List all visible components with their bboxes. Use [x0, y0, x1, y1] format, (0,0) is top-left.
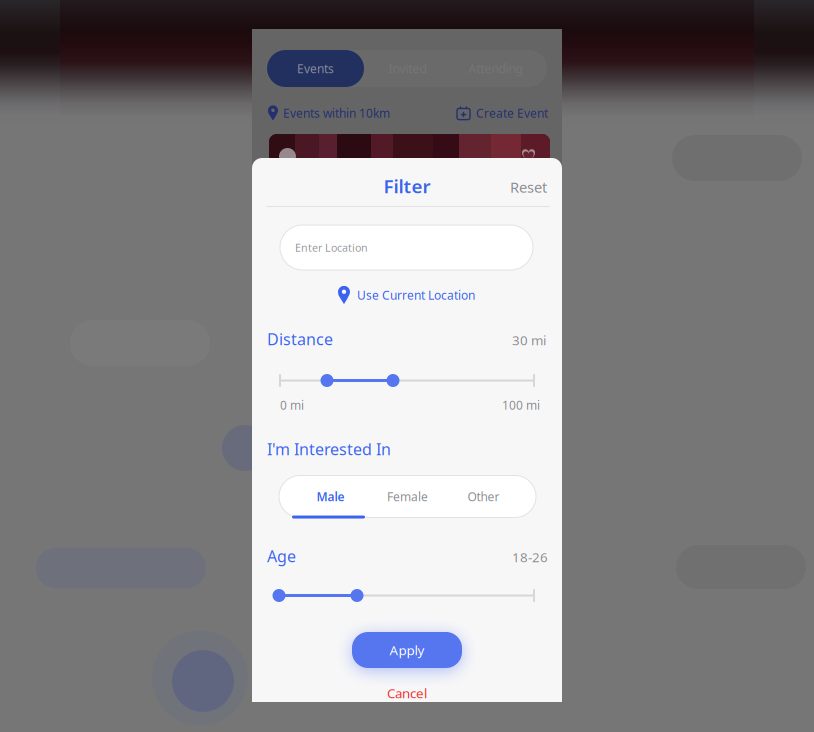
staticText: Events within 10km	[283, 105, 390, 121]
staticText: Apply	[389, 641, 424, 659]
staticText: Distance	[267, 328, 333, 350]
button[interactable]: Invited	[360, 50, 455, 87]
button[interactable]: Cancel	[367, 683, 447, 703]
staticText: Attending	[468, 60, 522, 76]
staticText: Other	[467, 488, 499, 504]
staticText: Cancel	[387, 684, 427, 702]
staticText: 30 mi	[512, 331, 546, 349]
staticText: I'm Interested In	[267, 438, 391, 460]
button[interactable]: Apply	[352, 632, 462, 668]
staticText: Reset	[510, 177, 547, 197]
button[interactable]: Reset	[491, 174, 547, 200]
button[interactable]: Create Event	[457, 104, 553, 122]
staticText: Events	[297, 60, 334, 76]
button[interactable]: Other	[279, 475, 356, 517]
staticText: Enter Location	[295, 240, 368, 255]
staticText: Create Event	[476, 105, 548, 121]
staticText: Filter	[383, 174, 430, 198]
staticText: Use Current Location	[357, 287, 475, 303]
staticText: Female	[387, 488, 428, 504]
button[interactable]: Events within 10km	[268, 104, 398, 122]
staticText: Male	[316, 488, 344, 504]
button[interactable]: Use Current Location	[338, 284, 490, 306]
button[interactable]: Events	[267, 50, 364, 87]
button[interactable]: Enter Location	[280, 225, 533, 270]
staticText: 18-26	[512, 548, 548, 566]
staticText: Age	[267, 545, 296, 567]
staticText: 0 mi	[280, 397, 304, 413]
staticText: Invited	[388, 60, 426, 76]
staticText: 100 mi	[502, 397, 540, 413]
button[interactable]: Female	[279, 475, 356, 517]
button[interactable]: Male	[279, 475, 356, 517]
